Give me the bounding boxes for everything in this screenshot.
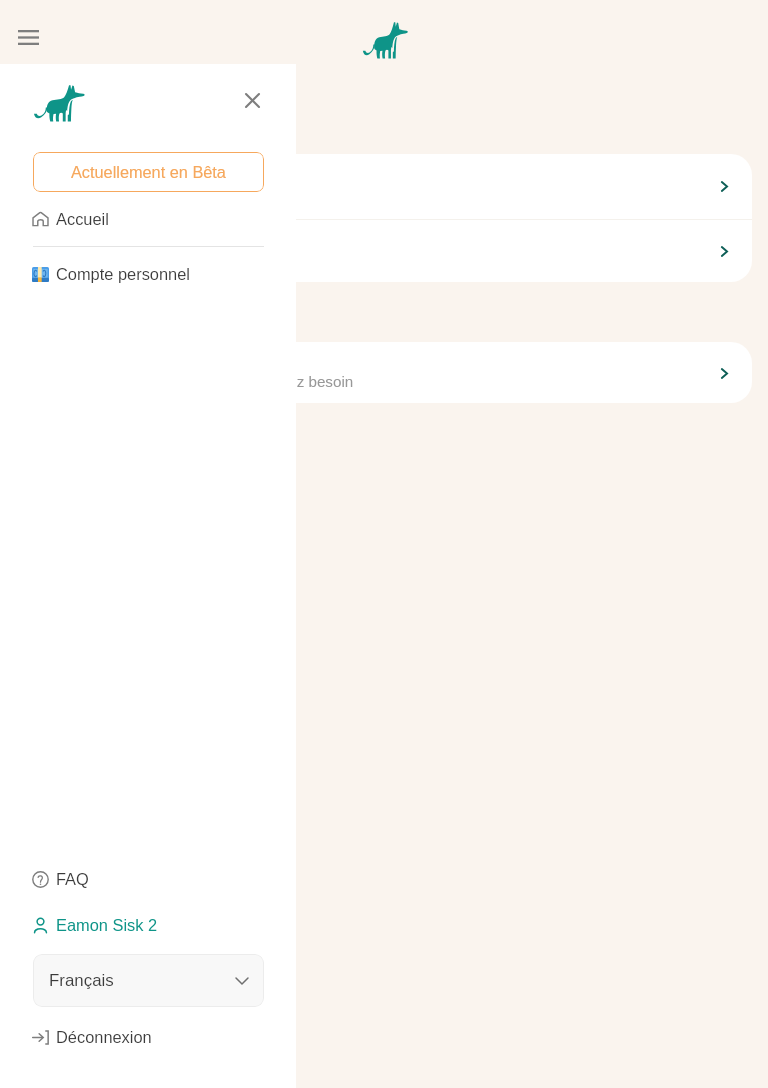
button[interactable]: Open navigation menu	[5, 6, 51, 52]
button[interactable]: Compte personnel	[0, 250, 296, 298]
staticText: Français	[49, 971, 114, 990]
staticText: Mes remboursements et factures	[40, 243, 260, 260]
button[interactable]: Actuellement en Bêta	[33, 152, 264, 192]
button[interactable]: Accueil	[0, 195, 296, 243]
button[interactable]: Une question ?	[16, 342, 752, 403]
button[interactable]: Déconnexion	[0, 1013, 296, 1061]
button[interactable]: Français	[33, 954, 264, 1007]
button[interactable]: Close navigation menu	[230, 78, 274, 122]
staticText: Actuellement en Bêta	[71, 163, 226, 181]
staticText: Eamon Sisk 2	[56, 916, 158, 934]
button[interactable]: Mon contrat et mes garanties	[16, 154, 752, 219]
staticText: Contactez-nous dès que vous en aurez bes…	[40, 373, 354, 390]
button[interactable]: Eamon Sisk 2	[0, 901, 296, 949]
staticText: Accueil	[56, 210, 109, 228]
staticText: Compte personnel	[56, 265, 190, 283]
staticText: FAQ	[56, 870, 89, 888]
staticText: Mon contrat et mes garanties	[40, 178, 235, 195]
button[interactable]: Mes remboursements et factures	[16, 220, 752, 282]
staticText: Déconnexion	[56, 1028, 152, 1046]
button[interactable]: FAQ	[0, 855, 296, 903]
